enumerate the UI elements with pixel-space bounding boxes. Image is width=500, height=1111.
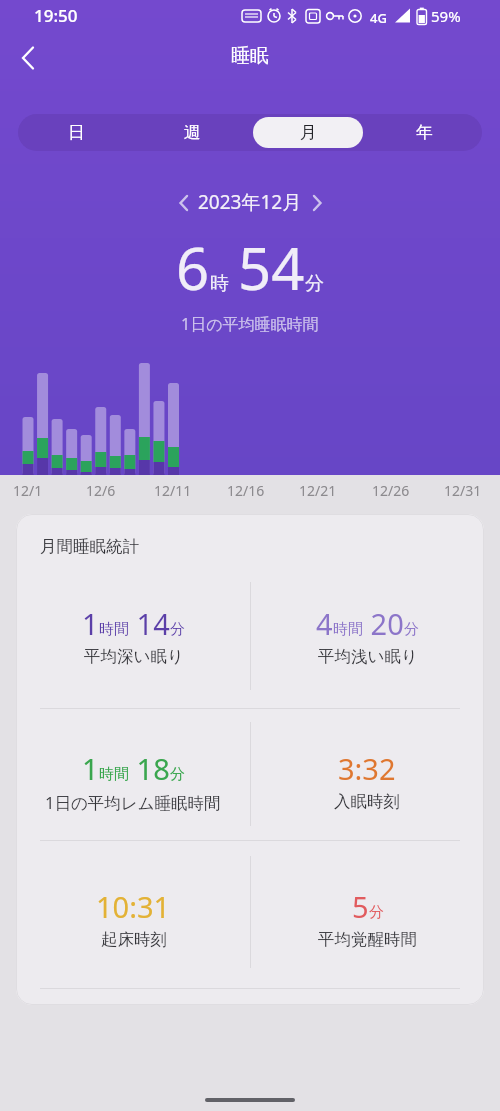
staticText: 1日の平均睡眠時間 xyxy=(181,313,319,335)
staticText: 2023年12月 xyxy=(198,189,302,215)
staticText: 時間 xyxy=(99,620,129,639)
button[interactable]: 3:32 xyxy=(252,749,482,812)
staticText: 月間睡眠統計 xyxy=(40,536,139,557)
staticText: 4G xyxy=(370,9,387,27)
staticText: 時間 xyxy=(333,620,363,639)
staticText: 時間 xyxy=(99,765,129,784)
staticText: 平均覚醒時間 xyxy=(318,929,417,950)
staticText: 年 xyxy=(416,122,433,143)
button[interactable]: 4 xyxy=(252,604,482,667)
button[interactable]: 月 xyxy=(253,117,363,148)
staticText: 平均浅い眠り xyxy=(318,646,418,667)
staticText: 日 xyxy=(68,122,85,143)
staticText: 分 xyxy=(170,765,185,784)
staticText: 12/16 xyxy=(227,481,265,500)
staticText: 3:32 xyxy=(338,749,396,788)
staticText: 起床時刻 xyxy=(101,929,167,950)
button[interactable]: 年 xyxy=(366,114,482,151)
staticText: 分 xyxy=(305,272,324,296)
staticText: 12/1 xyxy=(13,481,43,500)
staticText: 週 xyxy=(184,122,201,143)
button[interactable] xyxy=(8,40,48,76)
staticText: 分 xyxy=(369,903,384,922)
staticText: 12/26 xyxy=(372,481,410,500)
button[interactable]: 5 xyxy=(252,887,482,950)
staticText: 分 xyxy=(170,620,185,639)
staticText: 59% xyxy=(431,6,461,26)
staticText: 54 xyxy=(238,228,305,307)
button[interactable] xyxy=(170,190,196,216)
staticText: 19:50 xyxy=(34,4,78,27)
button[interactable]: 1 xyxy=(18,604,248,667)
staticText: 18 xyxy=(129,749,170,788)
staticText: 睡眠 xyxy=(231,44,269,68)
staticText: 12/11 xyxy=(154,481,192,500)
staticText: 12/21 xyxy=(299,481,337,500)
staticText: 平均深い眠り xyxy=(84,646,184,667)
staticText: 20 xyxy=(363,604,404,643)
staticText: 1 xyxy=(82,604,99,643)
staticText: 5 xyxy=(352,887,369,926)
staticText: 時 xyxy=(210,272,229,296)
staticText: 4 xyxy=(316,604,333,643)
button[interactable]: 10:31 xyxy=(18,887,248,950)
button[interactable]: 日 xyxy=(18,114,134,151)
button[interactable] xyxy=(304,190,330,216)
staticText: 12/31 xyxy=(444,481,482,500)
staticText: 入眠時刻 xyxy=(334,791,400,812)
button[interactable]: 週 xyxy=(134,114,250,151)
staticText: 1 xyxy=(82,749,99,788)
staticText: 12/6 xyxy=(86,481,116,500)
staticText: 14 xyxy=(129,604,170,643)
staticText: 6 xyxy=(176,228,210,307)
staticText: 分 xyxy=(404,620,419,639)
staticText: 1日の平均レム睡眠時間 xyxy=(45,791,221,814)
button[interactable]: 1 xyxy=(18,749,248,814)
staticText: 月 xyxy=(300,122,317,143)
staticText: 10:31 xyxy=(96,887,171,926)
